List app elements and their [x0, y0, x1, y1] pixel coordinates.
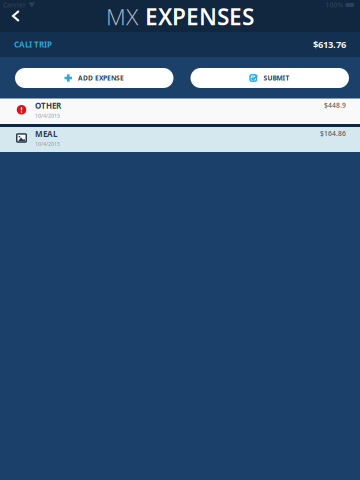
staticText: OTHER	[35, 100, 61, 111]
staticText: MEAL	[35, 129, 57, 139]
staticText: $164.86	[320, 129, 346, 138]
staticText: CALI TRIP	[14, 39, 52, 50]
button[interactable]: MEAL	[0, 127, 360, 152]
staticText: 10/4/2015	[35, 112, 60, 119]
button[interactable]: ADD EXPENSE	[15, 68, 173, 88]
button[interactable]: Back	[0, 10, 31, 32]
staticText: MX	[106, 1, 138, 31]
staticText: Carrier	[3, 1, 26, 9]
button[interactable]: SUBMIT	[190, 68, 349, 88]
staticText: 10/4/2015	[35, 140, 60, 147]
staticText: $613.76	[313, 38, 346, 51]
staticText: SUBMIT	[263, 74, 289, 82]
staticText: 100%	[325, 1, 343, 9]
staticText: ADD EXPENSE	[78, 74, 124, 82]
button[interactable]: OTHER	[0, 98, 360, 124]
staticText: EXPENSES	[145, 1, 254, 31]
staticText: $448.9	[324, 101, 346, 110]
